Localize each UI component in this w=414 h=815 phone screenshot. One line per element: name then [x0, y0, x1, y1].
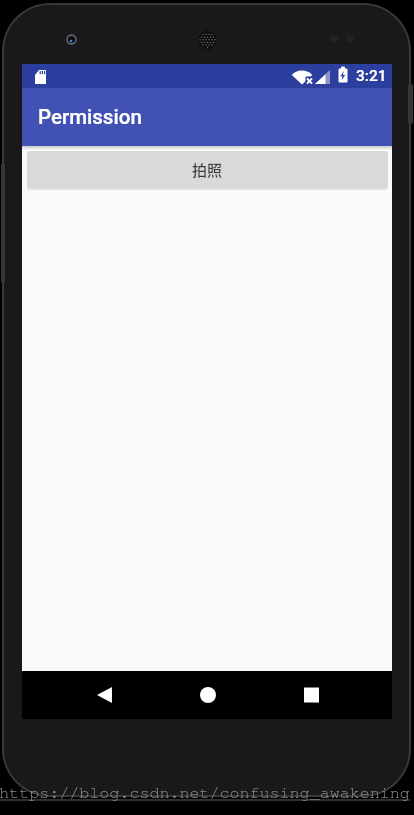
- staticText: 3:21: [356, 67, 387, 85]
- button[interactable]: [82, 671, 130, 719]
- button[interactable]: [287, 671, 335, 719]
- staticText: https://blog.csdn.net/confusing_awakenin…: [0, 785, 410, 802]
- staticText: 拍照: [192, 159, 223, 181]
- staticText: Permission: [38, 105, 142, 129]
- button[interactable]: [184, 671, 232, 719]
- button[interactable]: 拍照: [27, 151, 388, 188]
